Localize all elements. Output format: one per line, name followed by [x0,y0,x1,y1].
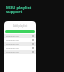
button[interactable]: Channel list [4,46,36,50]
button[interactable] [5,30,35,33]
staticText: Channel list [6,47,19,50]
staticText: support [6,9,23,15]
button[interactable]: Channel list [4,50,36,54]
staticText: Channel list [6,39,19,42]
staticText: Channel list [6,43,19,46]
button[interactable]: Channel list [4,38,36,42]
staticText: Channel list [6,35,19,38]
button[interactable]: Channel list [4,42,36,46]
staticText: Add playlist [13,24,28,28]
button[interactable]: Channel list [4,34,36,38]
staticText: Channel list [6,51,19,54]
staticText: M3U playlist [6,5,32,11]
